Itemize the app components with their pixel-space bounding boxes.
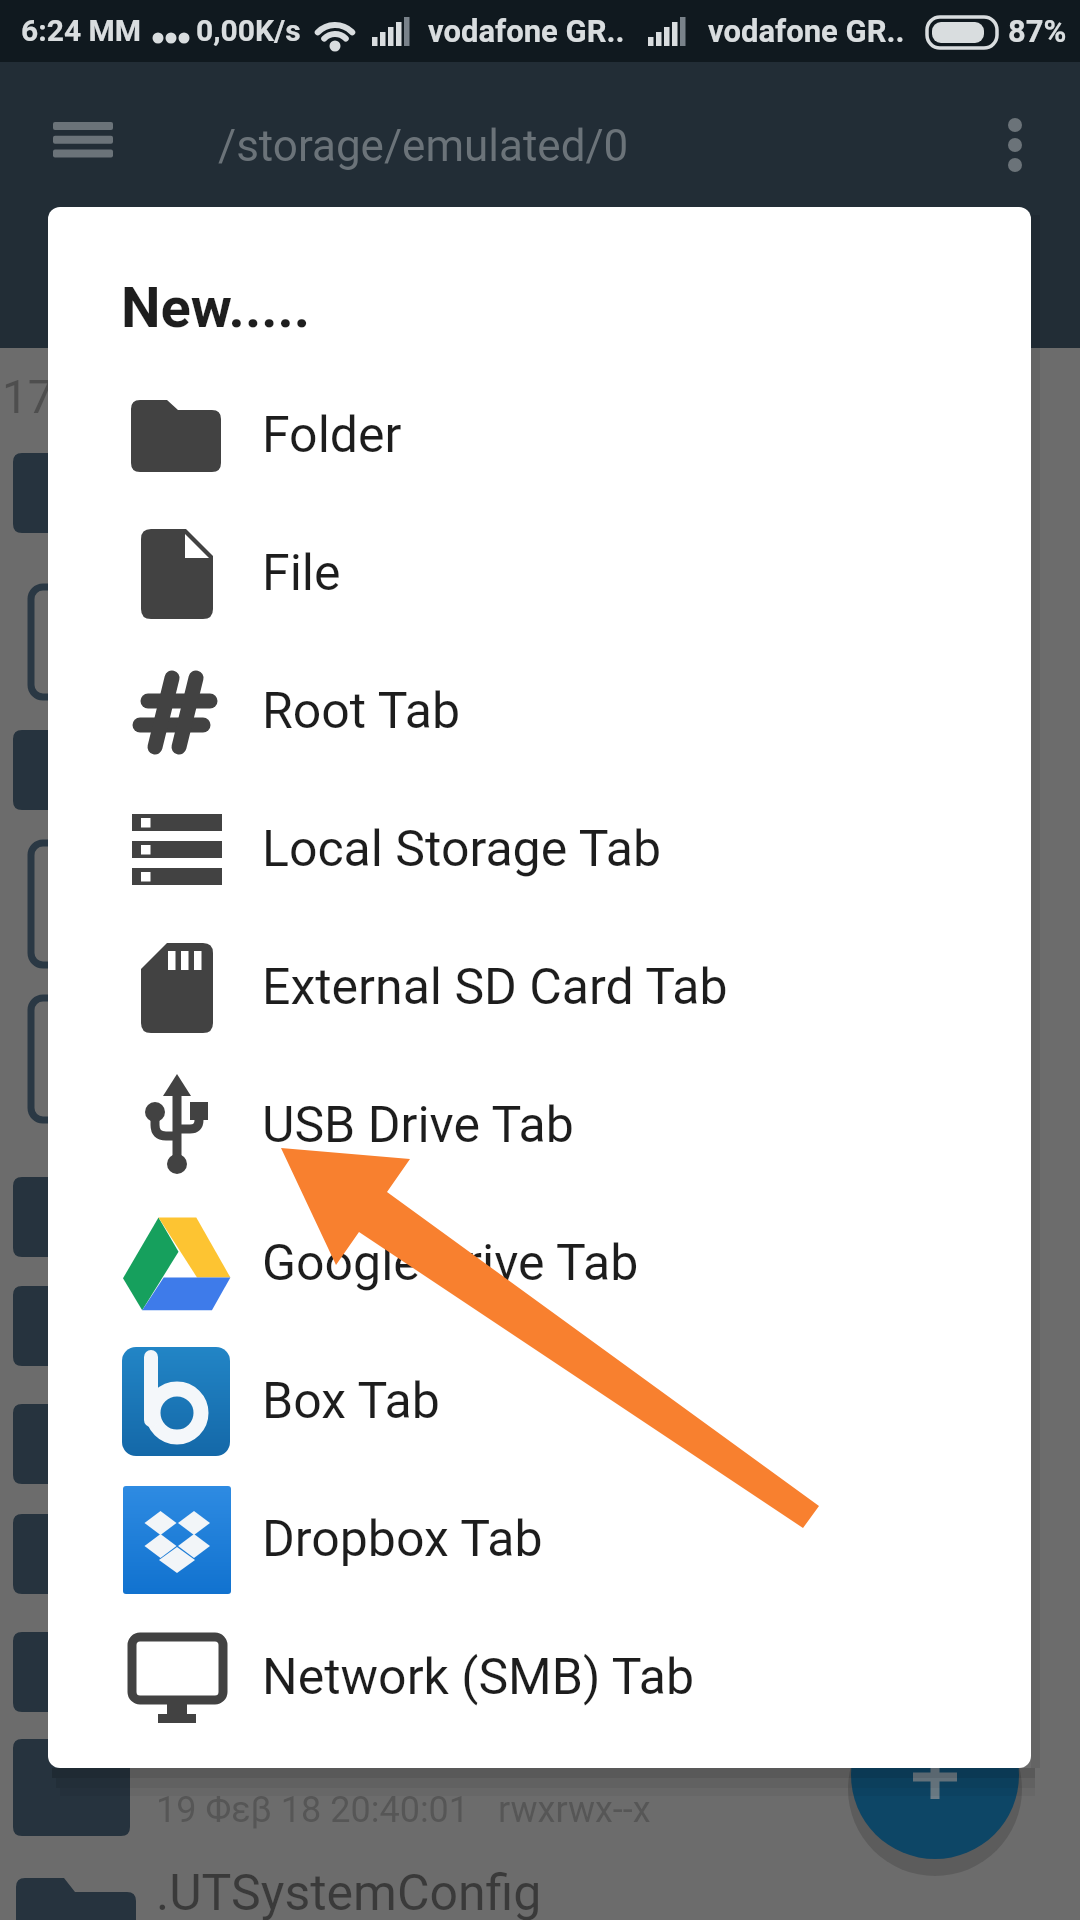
button[interactable] — [48, 919, 1031, 1057]
button[interactable] — [48, 1333, 1031, 1471]
staticText: vodafone GR.. — [708, 13, 905, 49]
staticText: 0,00K/s — [196, 13, 301, 48]
staticText: 6:24 MM — [21, 13, 142, 48]
staticText: .UTSystemConfig — [156, 1864, 542, 1920]
staticText: Google Drive Tab — [262, 1234, 639, 1293]
staticText: Folder — [262, 406, 402, 465]
staticText: Root Tab — [262, 682, 460, 741]
button[interactable] — [48, 1609, 1031, 1747]
button[interactable] — [48, 643, 1031, 781]
staticText: /storage/emulated/0 — [218, 120, 629, 172]
staticText: Network (SMB) Tab — [262, 1648, 695, 1707]
staticText: External SD Card Tab — [262, 958, 728, 1017]
button[interactable] — [48, 1471, 1031, 1609]
staticText: 17 — [2, 370, 54, 424]
button[interactable] — [48, 781, 1031, 919]
staticText: Dropbox Tab — [262, 1510, 543, 1569]
staticText: Box Tab — [262, 1372, 440, 1431]
staticText: New..... — [121, 275, 311, 341]
staticText: vodafone GR.. — [428, 13, 625, 49]
button[interactable] — [851, 1691, 1019, 1859]
staticText: USB Drive Tab — [262, 1096, 574, 1155]
staticText: rwxrwx--x — [498, 1789, 651, 1831]
staticText: 19 Φεβ 18 20:40:01 — [156, 1789, 470, 1831]
button[interactable] — [48, 1195, 1031, 1333]
button[interactable] — [48, 367, 1031, 505]
staticText: 87% — [1008, 13, 1067, 49]
button[interactable] — [48, 505, 1031, 643]
staticText: Local Storage Tab — [262, 820, 661, 879]
button[interactable] — [48, 1057, 1031, 1195]
staticText: File — [262, 544, 341, 603]
